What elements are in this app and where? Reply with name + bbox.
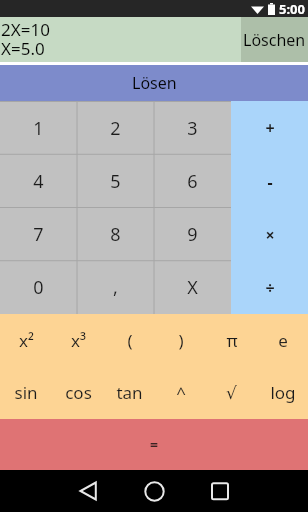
- button[interactable]: log: [257, 366, 308, 419]
- button[interactable]: 3: [154, 101, 231, 155]
- staticText: 7: [33, 222, 44, 247]
- staticText: cos: [65, 381, 92, 404]
- button[interactable]: sin: [0, 366, 52, 419]
- staticText: 6: [187, 169, 198, 194]
- staticText: tan: [116, 381, 143, 404]
- button[interactable]: -: [231, 155, 308, 208]
- button[interactable]: ÷: [231, 261, 308, 314]
- staticText: log: [270, 381, 296, 404]
- button[interactable]: √: [206, 366, 257, 419]
- staticText: ÷: [265, 277, 275, 299]
- staticText: 2X=10 X=5.0: [1, 18, 50, 60]
- staticText: X: [187, 275, 198, 300]
- button[interactable]: cos: [52, 366, 104, 419]
- button[interactable]: Löschen: [241, 17, 308, 62]
- staticText: =: [150, 435, 159, 454]
- staticText: -: [267, 171, 273, 193]
- staticText: 0: [33, 275, 44, 300]
- staticText: +: [265, 117, 275, 139]
- button[interactable]: 9: [154, 208, 231, 261]
- button[interactable]: e: [257, 314, 308, 366]
- button[interactable]: [198, 470, 242, 512]
- button[interactable]: X: [154, 261, 231, 314]
- button[interactable]: 5: [77, 155, 154, 208]
- button[interactable]: ,: [77, 261, 154, 314]
- staticText: ^: [176, 381, 186, 404]
- staticText: ): [178, 329, 184, 352]
- button[interactable]: 2: [77, 101, 154, 155]
- staticText: x²: [19, 329, 34, 352]
- button[interactable]: ^: [155, 366, 206, 419]
- staticText: 4: [33, 169, 44, 194]
- staticText: (: [127, 329, 133, 352]
- staticText: Lösen: [132, 72, 177, 94]
- staticText: e: [278, 329, 288, 352]
- button[interactable]: 6: [154, 155, 231, 208]
- button[interactable]: Lösen: [0, 65, 308, 101]
- staticText: 8: [110, 222, 121, 247]
- staticText: ,: [113, 275, 118, 300]
- button[interactable]: [132, 470, 176, 512]
- button[interactable]: ): [155, 314, 206, 366]
- staticText: sin: [14, 381, 38, 404]
- button[interactable]: π: [206, 314, 257, 366]
- staticText: 9: [187, 222, 198, 247]
- button[interactable]: 0: [0, 261, 77, 314]
- button[interactable]: [66, 470, 110, 512]
- staticText: 1: [33, 116, 44, 141]
- button[interactable]: 1: [0, 101, 77, 155]
- staticText: Löschen: [243, 29, 306, 51]
- button[interactable]: 8: [77, 208, 154, 261]
- staticText: ×: [265, 224, 275, 246]
- button[interactable]: x³: [52, 314, 104, 366]
- button[interactable]: x²: [0, 314, 52, 366]
- button[interactable]: +: [231, 101, 308, 155]
- button[interactable]: tan: [104, 366, 155, 419]
- button[interactable]: 4: [0, 155, 77, 208]
- staticText: x³: [71, 329, 86, 352]
- button[interactable]: =: [0, 419, 308, 470]
- button[interactable]: (: [104, 314, 155, 366]
- staticText: π: [226, 329, 238, 352]
- staticText: 3: [187, 116, 198, 141]
- staticText: 5:00: [279, 0, 305, 17]
- staticText: 5: [110, 169, 121, 194]
- button[interactable]: ×: [231, 208, 308, 261]
- staticText: √: [226, 383, 237, 403]
- button[interactable]: 7: [0, 208, 77, 261]
- staticText: 2: [110, 116, 121, 141]
